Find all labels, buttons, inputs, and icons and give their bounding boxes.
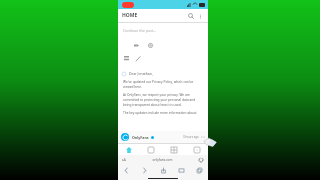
button[interactable]: Share xyxy=(159,166,168,175)
staticText: ᴀA xyxy=(122,158,126,162)
staticText: onlyfans.com xyxy=(152,158,173,162)
staticText: OnlyFans xyxy=(132,135,149,140)
button[interactable]: More options xyxy=(196,12,204,20)
button[interactable]: OnlyFans xyxy=(118,131,208,143)
button[interactable]: Forward xyxy=(140,166,149,175)
staticText: Continue the post... xyxy=(123,28,157,33)
button[interactable]: Edit xyxy=(135,55,142,62)
staticText: The key updates include more information… xyxy=(123,111,203,115)
button[interactable]: Bookmarks xyxy=(177,166,186,175)
button[interactable]: Search xyxy=(186,11,196,21)
button[interactable]: Tabs xyxy=(195,166,204,175)
button[interactable]: Home xyxy=(118,144,140,155)
staticText: We've updated our Privacy Policy, which … xyxy=(123,80,203,89)
staticText: Dear Jonathan, xyxy=(129,71,153,76)
button[interactable]: All xyxy=(123,55,130,62)
button[interactable]: Notifications xyxy=(140,144,162,155)
button[interactable]: Settings xyxy=(146,41,154,49)
button[interactable]: Send xyxy=(132,41,140,49)
staticText: HOME xyxy=(122,12,138,19)
staticText: At OnlyFans, we respect your privacy. We… xyxy=(123,93,203,107)
button[interactable]: Explore xyxy=(162,144,185,155)
button[interactable]: Back xyxy=(122,166,131,175)
staticText: 3 hours ago xyxy=(183,135,199,139)
button[interactable]: Reload xyxy=(198,157,204,163)
button[interactable]: Messages xyxy=(185,144,208,155)
